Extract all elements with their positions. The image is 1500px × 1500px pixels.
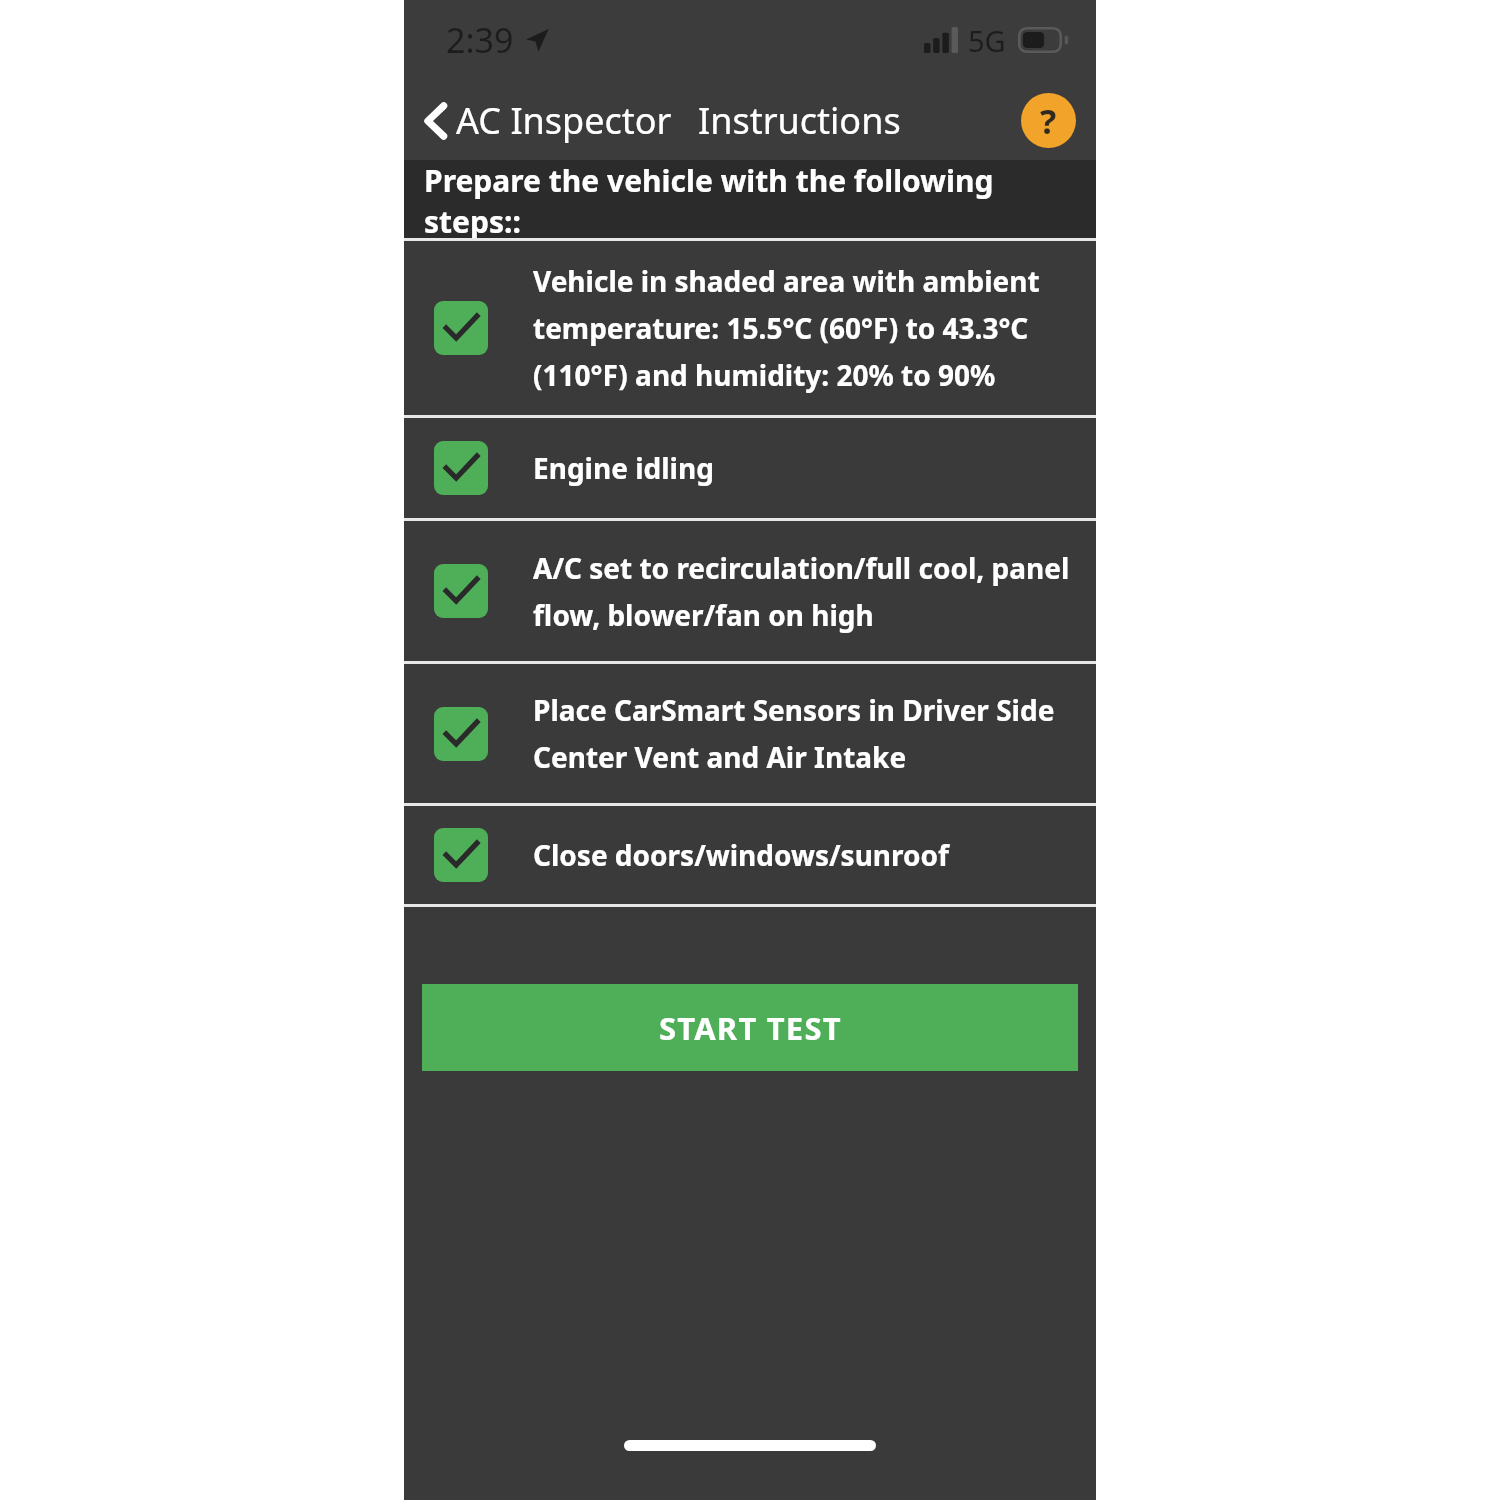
button[interactable]: START TEST — [422, 984, 1078, 1071]
button[interactable]: Checked — [404, 664, 1096, 803]
button[interactable]: AC Inspector — [420, 90, 676, 151]
staticText: Instructions — [698, 96, 901, 145]
staticText: flow, blower/fan on high — [533, 596, 874, 634]
button[interactable]: Help — [1021, 93, 1076, 148]
staticText: Center Vent and Air Intake — [533, 738, 907, 776]
other: Checked — [434, 301, 488, 355]
staticText: START TEST — [659, 1007, 842, 1049]
staticText: (110°F) and humidity: 20% to 90% — [533, 356, 996, 394]
staticText: Engine idling — [533, 449, 714, 487]
button[interactable]: Checked — [404, 806, 1096, 904]
other: Checked — [434, 564, 488, 618]
staticText: Close doors/windows/sunroof — [533, 836, 949, 874]
staticText: Vehicle in shaded area with ambient — [533, 262, 1040, 300]
staticText: temperature: 15.5°C (60°F) to 43.3°C — [533, 309, 1029, 347]
button[interactable]: Checked — [404, 418, 1096, 518]
other: Checked — [434, 441, 488, 495]
other: Checked — [434, 707, 488, 761]
staticText: 2:39 — [446, 17, 514, 63]
staticText: 5G — [968, 21, 1006, 60]
button[interactable]: Checked — [404, 521, 1096, 661]
staticText: A/C set to recirculation/full cool, pane… — [533, 549, 1078, 587]
staticText: Prepare the vehicle with the following s… — [424, 160, 1080, 238]
staticText: AC Inspector — [456, 96, 672, 145]
staticText: Place CarSmart Sensors in Driver Side — [533, 691, 1055, 729]
staticText: ? — [1040, 98, 1057, 144]
other: Checked — [434, 828, 488, 882]
button[interactable]: Checked — [404, 241, 1096, 415]
